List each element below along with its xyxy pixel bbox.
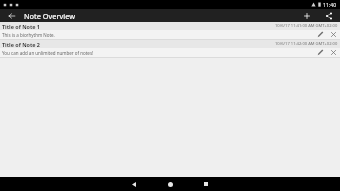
button[interactable]: Edit note	[314, 30, 327, 39]
staticText: You can add an unlimited number of notes…	[2, 50, 314, 56]
staticText: Title of Note 2	[2, 41, 40, 48]
button[interactable]: Title of Note 2	[0, 40, 340, 57]
button[interactable]: Back	[116, 177, 152, 191]
staticText: 11:40	[323, 1, 337, 8]
button[interactable]: Delete note	[327, 48, 340, 57]
staticText: 10/6/17 11:42:00 AM GMT+02:00	[275, 41, 338, 47]
button[interactable]: Title of Note 1	[0, 22, 340, 39]
button[interactable]: Add note	[296, 9, 318, 22]
staticText: 10/6/17 11:41:00 AM GMT+02:00	[275, 23, 338, 29]
staticText: Note Overview	[24, 11, 76, 21]
button[interactable]: Edit note	[314, 48, 327, 57]
button[interactable]: Navigate up	[0, 9, 24, 22]
button[interactable]: Share	[318, 9, 340, 22]
button[interactable]: Home	[152, 177, 188, 191]
staticText: This is a biorhythm Note.	[2, 32, 314, 38]
staticText: Title of Note 1	[2, 23, 40, 30]
button[interactable]: Delete note	[327, 30, 340, 39]
button[interactable]: Recent apps	[188, 177, 224, 191]
